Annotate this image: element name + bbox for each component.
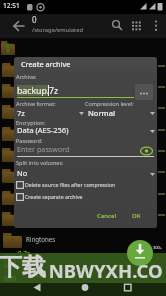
button[interactable]: [86, 107, 154, 119]
staticText: 12:51: [3, 1, 20, 10]
button[interactable]: [10, 16, 30, 36]
staticText: Ringtones: [26, 235, 56, 243]
staticText: Compression level:: [85, 100, 134, 107]
staticText: Cancel: [97, 212, 117, 220]
button[interactable]: [16, 180, 136, 190]
button[interactable]: [148, 16, 164, 36]
button[interactable]: [128, 16, 146, 36]
staticText: backup.7z: [17, 85, 59, 97]
button[interactable]: [16, 167, 154, 179]
staticText: 0.7z: [18, 249, 30, 257]
staticText: Archive:: [16, 73, 37, 80]
button[interactable]: [16, 143, 136, 156]
button[interactable]: Cancel: [92, 208, 122, 223]
staticText: • NBWYXH.CO: [37, 258, 163, 283]
staticText: 300+: [153, 245, 163, 250]
button[interactable]: [16, 192, 136, 202]
button[interactable]: OK: [126, 208, 148, 223]
staticText: /storage/emulated: [32, 26, 84, 34]
button[interactable]: [135, 84, 153, 100]
staticText: 下载: [0, 252, 46, 282]
button[interactable]: [139, 144, 154, 156]
staticText: Split into volumes:: [16, 159, 64, 166]
staticText: 4.7 KB: [18, 258, 32, 264]
button[interactable]: [127, 240, 153, 266]
staticText: Password:: [16, 137, 43, 144]
staticText: No: [17, 168, 28, 178]
staticText: Archive format:: [16, 100, 56, 107]
staticText: Delete source files after compression: [25, 181, 116, 188]
button[interactable]: [16, 107, 84, 119]
button[interactable]: [16, 125, 154, 137]
staticText: 7z: [17, 108, 25, 118]
staticText: Enter password: [17, 144, 70, 154]
button[interactable]: [108, 16, 126, 36]
button[interactable]: [0, 229, 166, 250]
staticText: Normal: [88, 108, 115, 118]
staticText: 0: [32, 14, 37, 25]
staticText: OK: [132, 212, 141, 220]
staticText: Create separate archive: [25, 193, 83, 200]
staticText: Create archive: [21, 59, 71, 69]
staticText: Data (AES-256): [17, 125, 69, 135]
staticText: Encryption:: [16, 119, 46, 126]
staticText: sh 1.0.8: [30, 273, 47, 279]
